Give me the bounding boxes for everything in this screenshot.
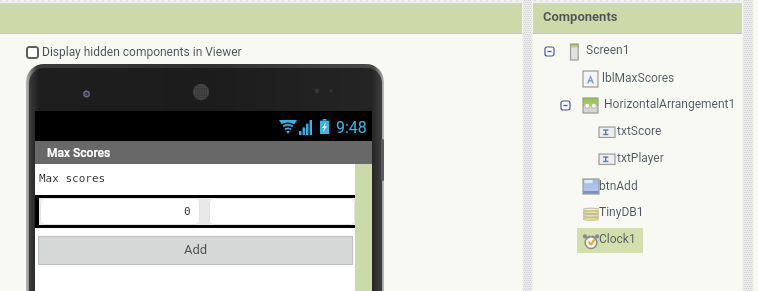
button[interactable] [563, 39, 636, 64]
staticText: Components [543, 9, 618, 24]
other: Mobile signal [299, 120, 312, 135]
button[interactable]: Collapse Screen1 [545, 47, 554, 56]
button[interactable]: Add [38, 236, 353, 265]
button[interactable] [577, 228, 650, 253]
staticText: Max scores [39, 172, 106, 185]
staticText: txtPlayer [617, 151, 664, 165]
button[interactable] [576, 175, 649, 200]
staticText: txtScore [617, 124, 662, 138]
button[interactable]: 0 [39, 198, 355, 225]
button[interactable]: Display hidden components in Viewer [26, 44, 242, 60]
staticText: 9:48 [336, 118, 367, 137]
button[interactable] [577, 93, 654, 118]
button[interactable] [209, 198, 355, 225]
button[interactable] [577, 201, 649, 226]
staticText: Clock1 [599, 232, 636, 246]
staticText: Screen1 [586, 43, 630, 57]
staticText: lblMaxScores [602, 71, 675, 85]
other: Battery charging [320, 119, 329, 134]
staticText: HorizontalArrangement1 [604, 97, 736, 111]
button[interactable] [593, 120, 668, 145]
button[interactable]: Collapse HorizontalArrangement1 [561, 101, 570, 110]
staticText: TinyDB1 [599, 205, 644, 219]
staticText: btnAdd [599, 179, 638, 193]
staticText: 0 [184, 205, 191, 218]
button[interactable] [577, 67, 652, 92]
button[interactable]: 0 [40, 198, 200, 225]
button[interactable] [593, 147, 668, 172]
staticText: Display hidden components in Viewer [42, 45, 242, 59]
other: Wi-Fi [279, 120, 297, 134]
staticText: Add [184, 242, 208, 257]
staticText: Max Scores [47, 146, 111, 160]
